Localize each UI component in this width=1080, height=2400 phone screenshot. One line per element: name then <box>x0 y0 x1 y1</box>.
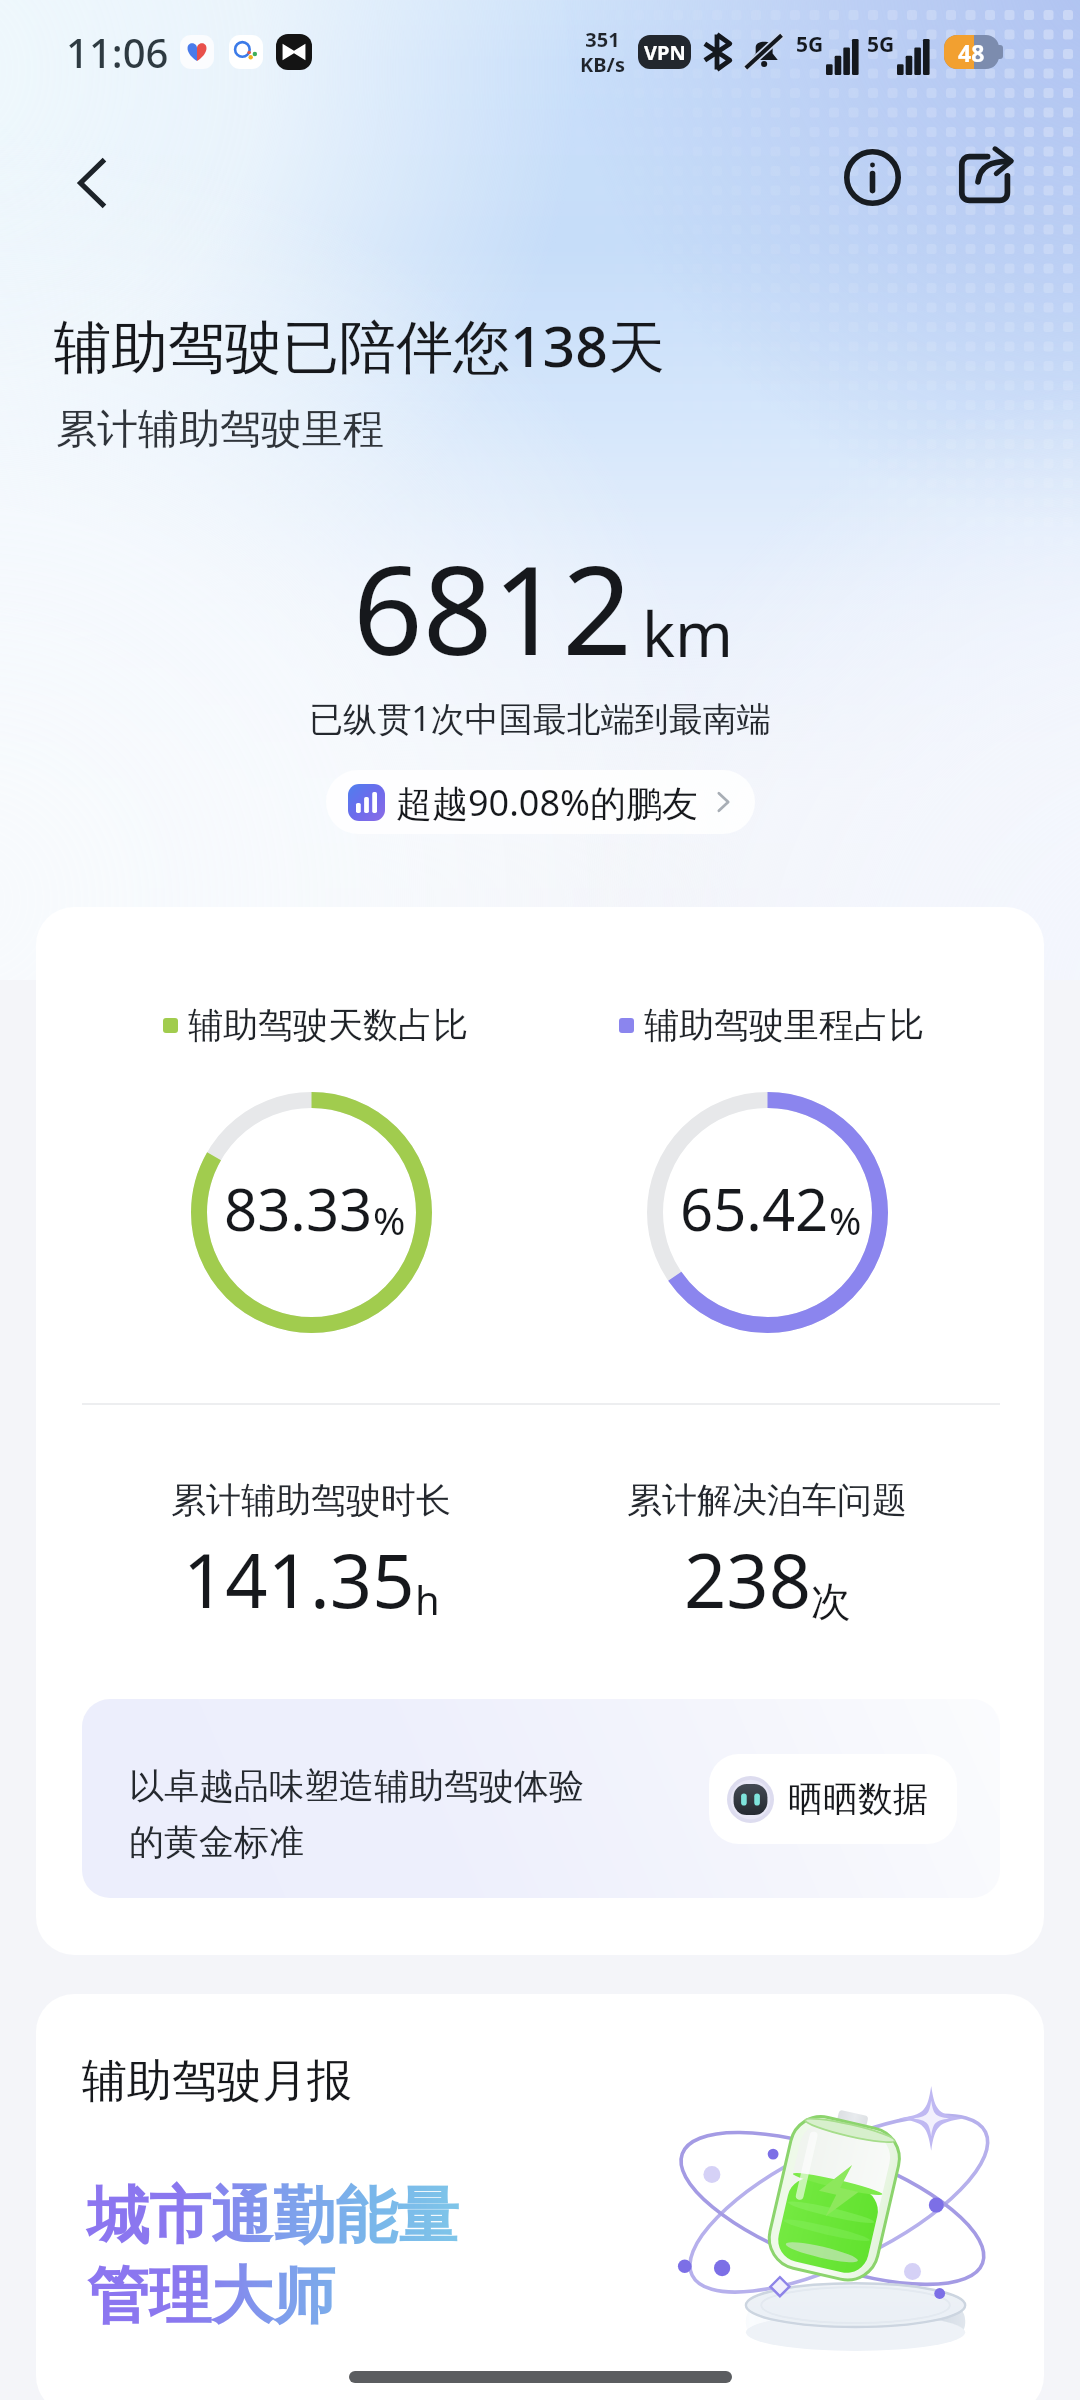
staticText: 累计解决泊车问题 <box>627 1478 907 1522</box>
staticText: 累计辅助驾驶时长 <box>171 1478 451 1522</box>
staticText: 次 <box>811 1576 851 1626</box>
staticText: 65.42 <box>680 1169 829 1248</box>
button[interactable]: 辅助驾驶月报 <box>36 1994 1044 2400</box>
button[interactable]: 晒晒数据 <box>709 1754 957 1844</box>
staticText: 辅助驾驶月报 <box>82 2053 352 2110</box>
staticText: 141.35 <box>183 1529 415 1630</box>
button[interactable]: 超越90.08%的鹏友 <box>326 770 755 834</box>
staticText: km <box>642 591 734 675</box>
staticText: 351 KB/s <box>580 26 625 78</box>
staticText: 累计辅助驾驶里程 <box>56 404 384 456</box>
staticText: 11:06 <box>66 25 169 79</box>
button[interactable]: Info <box>824 129 920 225</box>
staticText: % <box>829 1193 862 1246</box>
staticText: 5G <box>796 30 824 59</box>
staticText: 238 <box>684 1529 811 1630</box>
staticText: h <box>415 1572 440 1626</box>
staticText: 已纵贯1次中国最北端到最南端 <box>0 695 1080 741</box>
staticText: % <box>373 1193 406 1246</box>
staticText: 辅助驾驶天数占比 <box>188 1003 468 1047</box>
button[interactable]: Back <box>46 135 142 231</box>
staticText: 城市通勤能量 管理大师 <box>87 2177 459 2335</box>
staticText: 超越90.08%的鹏友 <box>396 778 698 827</box>
button[interactable]: Share <box>936 129 1032 225</box>
staticText: 以卓越品味塑造辅助驾驶体验 的黄金标准 <box>129 1764 584 1864</box>
staticText: 辅助驾驶已陪伴您138天 <box>54 306 665 384</box>
staticText: 晒晒数据 <box>788 1777 928 1821</box>
staticText: 83.33 <box>224 1169 373 1248</box>
staticText: 48 <box>958 37 985 68</box>
staticText: 5G <box>867 30 895 59</box>
staticText: 辅助驾驶里程占比 <box>644 1003 924 1047</box>
staticText: VPN <box>644 39 686 66</box>
staticText: 6812 <box>353 525 633 691</box>
